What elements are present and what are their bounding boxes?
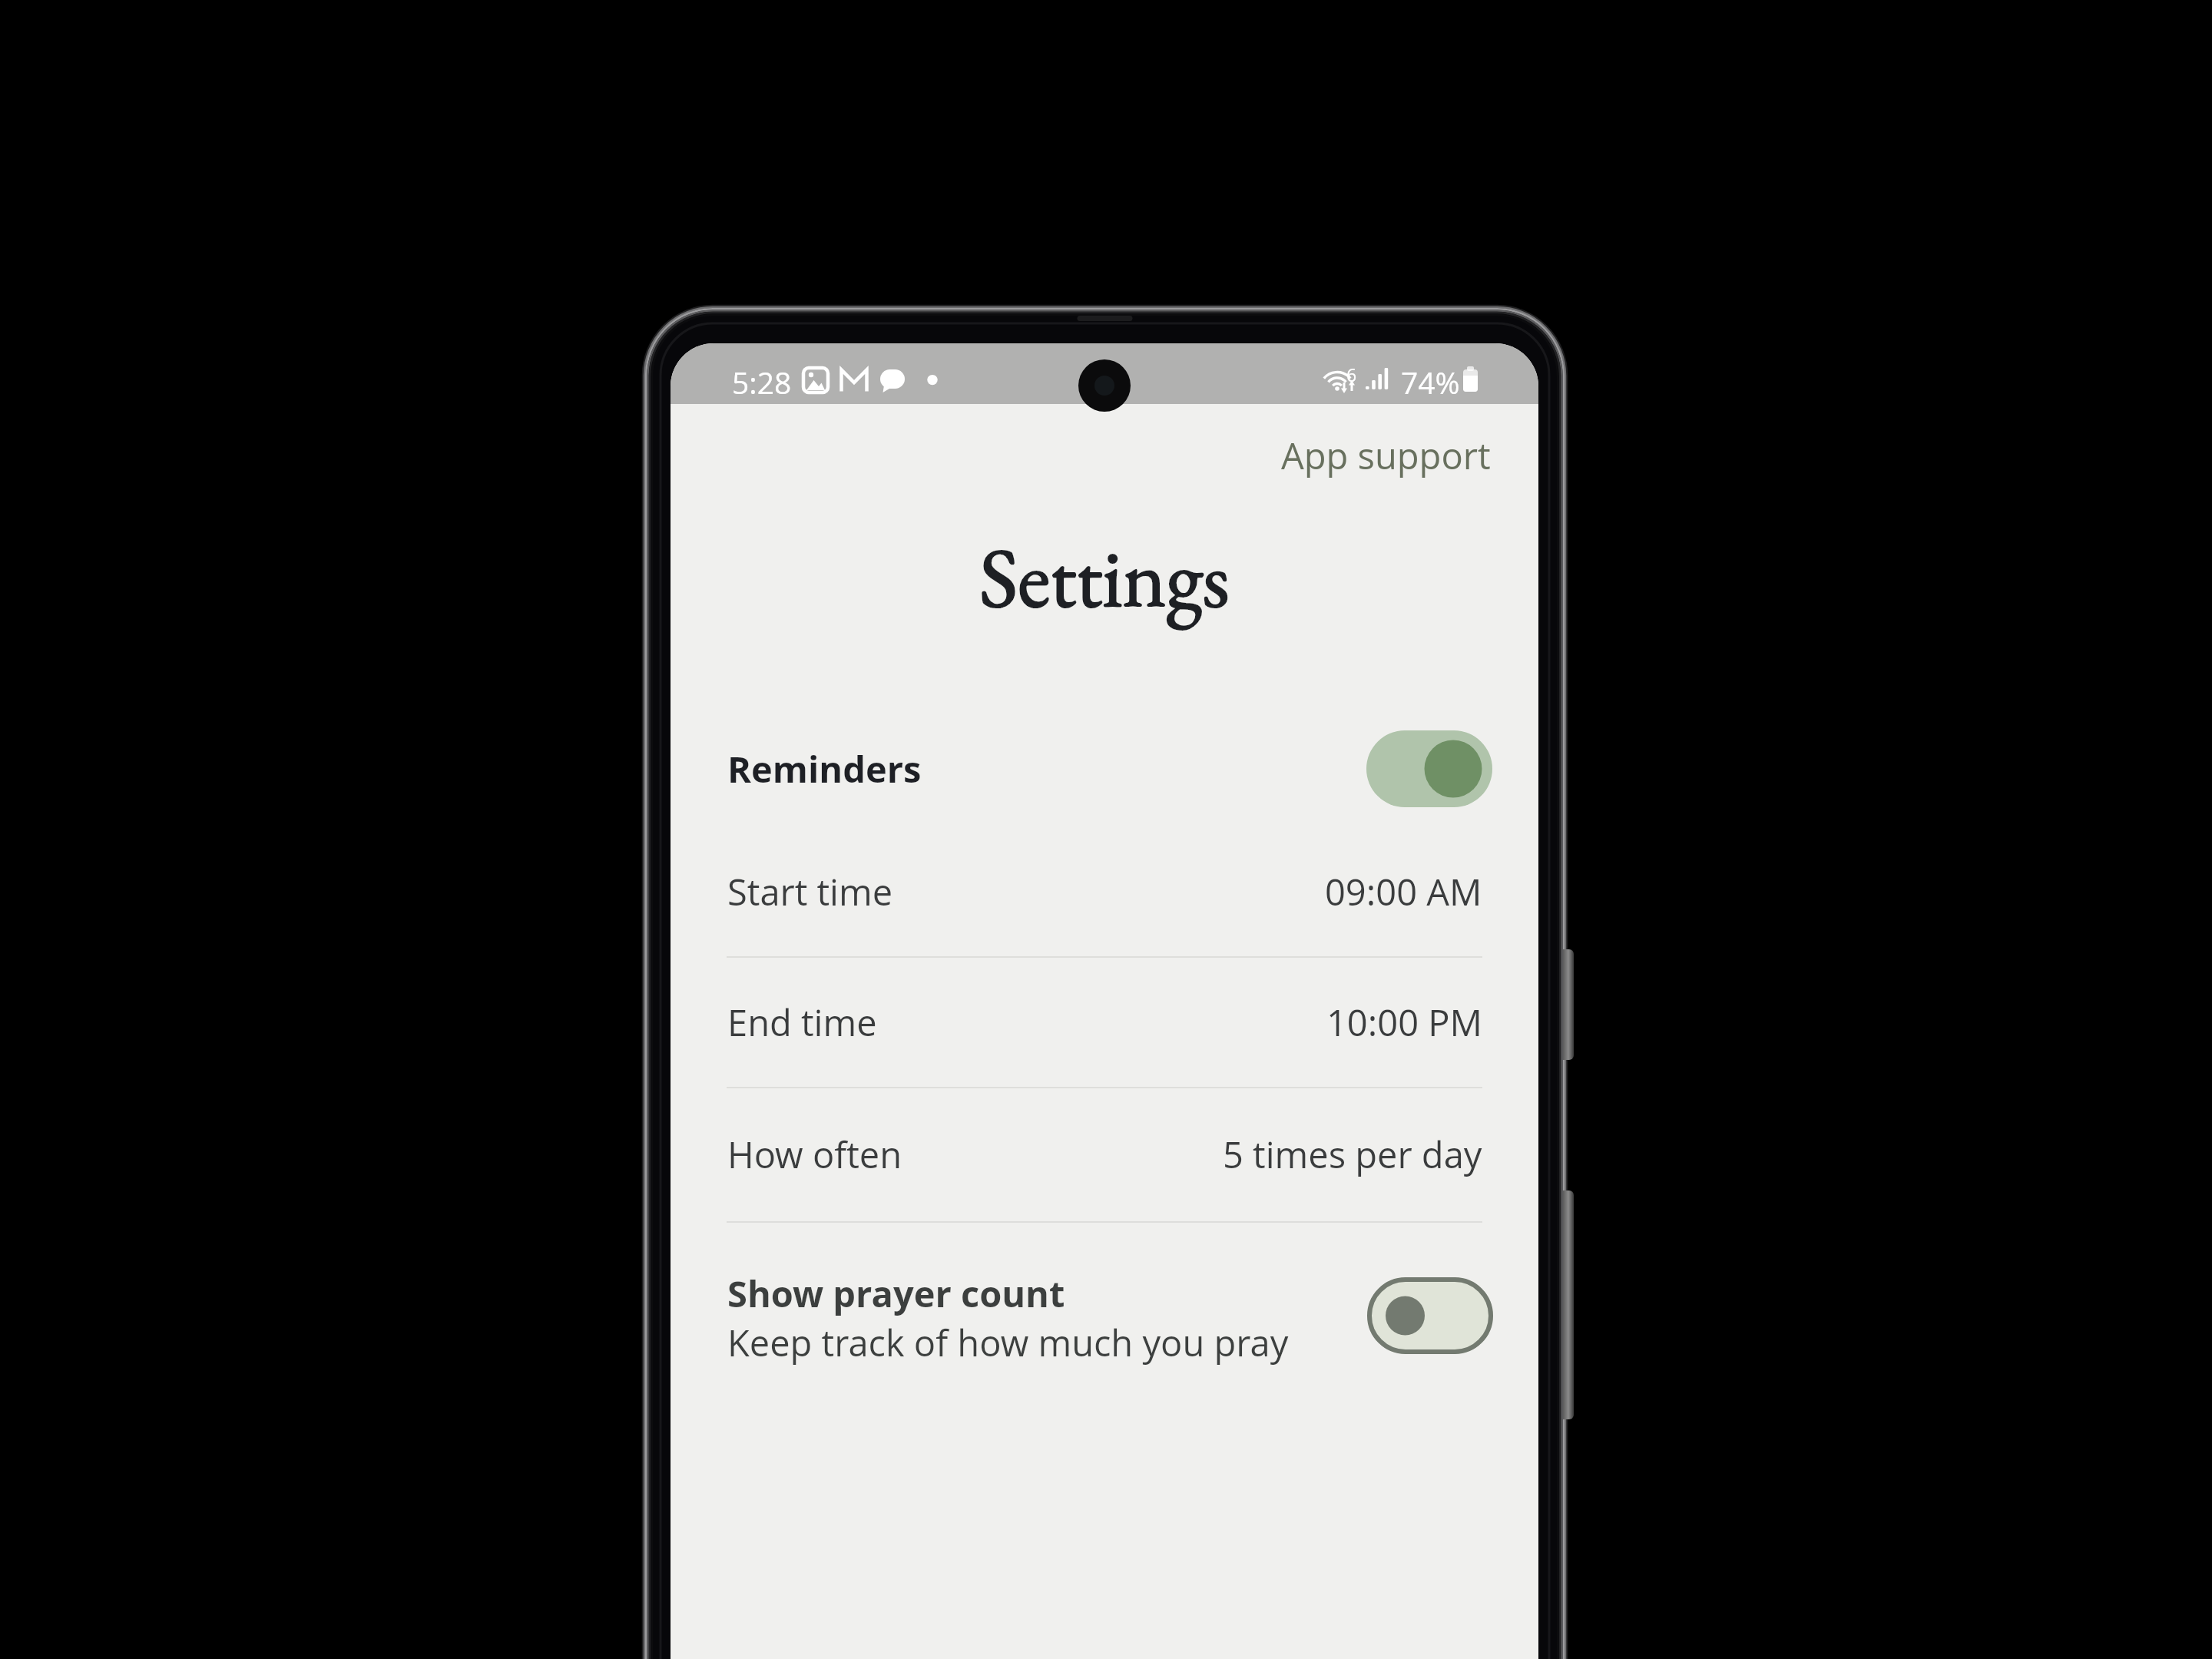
staticText: 5 times per day <box>1223 1130 1482 1179</box>
staticText: Start time <box>727 867 893 916</box>
button[interactable]: End time <box>727 965 1482 1080</box>
staticText: Settings <box>979 522 1230 631</box>
button[interactable]: How often <box>727 1097 1482 1212</box>
button[interactable]: Disabled toggle <box>1367 1277 1493 1354</box>
button[interactable]: Enabled toggle <box>1366 730 1492 807</box>
staticText: End time <box>727 998 877 1047</box>
staticText: 10:00 PM <box>1326 998 1482 1047</box>
staticText: How often <box>727 1130 902 1179</box>
staticText: 5:28 <box>732 362 792 402</box>
staticText: 6 <box>1346 363 1357 386</box>
staticText: Keep track of how much you pray <box>727 1318 1289 1367</box>
staticText: 09:00 AM <box>1325 867 1482 916</box>
button[interactable]: App support <box>1276 425 1495 486</box>
staticText: Show prayer count <box>727 1269 1065 1318</box>
staticText: 74% <box>1401 362 1460 402</box>
button[interactable]: Start time <box>727 834 1482 949</box>
staticText: Reminders <box>727 744 922 793</box>
button[interactable]: Reminders <box>727 711 1492 826</box>
staticText: Settings <box>979 522 1230 631</box>
staticText: App support <box>1281 431 1491 480</box>
